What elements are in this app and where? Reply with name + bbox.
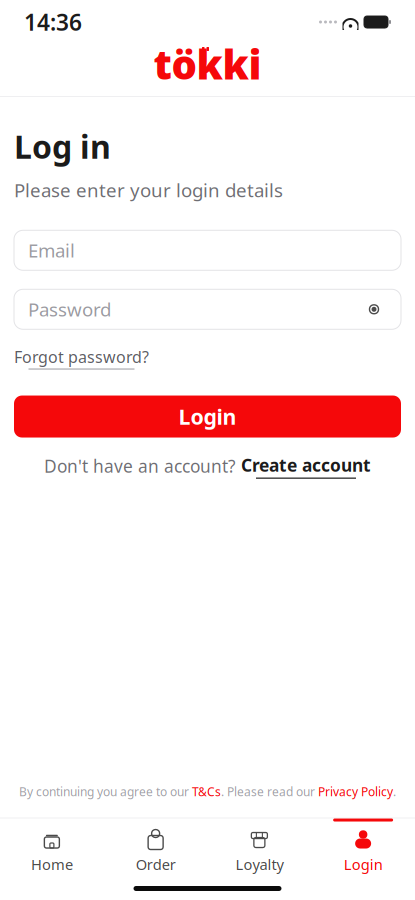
staticText: By continuing you agree to our (19, 784, 192, 799)
button[interactable]: Login (14, 395, 401, 437)
staticText: Loyalty (235, 854, 283, 874)
staticText: T&Cs (192, 784, 221, 799)
staticText: Order (136, 854, 176, 874)
staticText: 14:36 (24, 7, 82, 37)
staticText: Email (28, 238, 75, 263)
button[interactable]: Forgot password? (14, 346, 149, 369)
staticText: Home (31, 854, 73, 874)
staticText: . Please read our (221, 784, 318, 799)
staticText: Create account (241, 453, 371, 476)
staticText: Please enter your login details (14, 177, 283, 202)
button[interactable]: Order (104, 818, 208, 880)
staticText: Login (178, 402, 236, 431)
button[interactable]: Don't have an account? (14, 453, 401, 479)
staticText: Log in (14, 125, 111, 167)
staticText: Privacy Policy (318, 784, 393, 799)
staticText: Password (28, 297, 111, 322)
button[interactable]: Show password (361, 296, 387, 322)
button[interactable]: Home (0, 818, 104, 880)
staticText: Login (344, 854, 383, 874)
staticText: . (393, 784, 396, 799)
staticText: Don't have an account? (44, 455, 236, 478)
staticText: tökki (153, 37, 261, 90)
button[interactable]: Loyalty (207, 818, 311, 880)
button[interactable]: Login (311, 818, 415, 880)
staticText: Forgot password? (14, 346, 149, 367)
